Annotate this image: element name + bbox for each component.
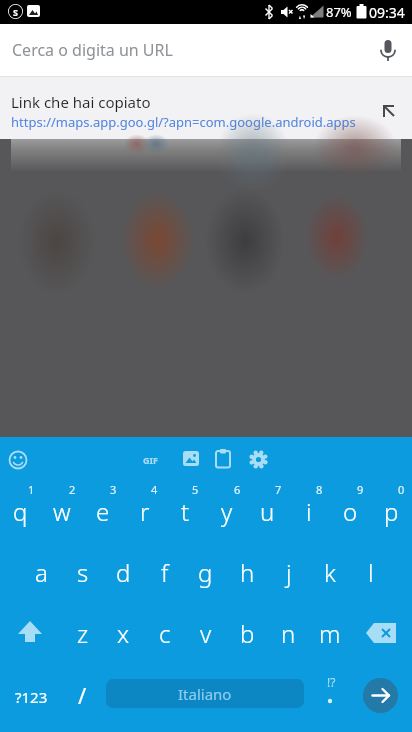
staticText: q xyxy=(13,495,28,528)
staticText: y xyxy=(221,495,233,528)
button[interactable] xyxy=(10,612,50,654)
staticText: l xyxy=(368,556,374,589)
button[interactable]: Italiano xyxy=(106,679,304,708)
button[interactable]: j xyxy=(268,546,309,598)
button[interactable]: n xyxy=(268,607,309,659)
button[interactable]: g xyxy=(185,546,226,598)
button[interactable]: w xyxy=(41,485,82,537)
button[interactable]: l xyxy=(350,546,391,598)
button[interactable] xyxy=(363,678,398,713)
button[interactable]: t xyxy=(165,485,206,537)
staticText: 0 xyxy=(398,482,405,496)
staticText: Italiano xyxy=(178,684,232,704)
button[interactable]: o xyxy=(330,485,371,537)
staticText: k xyxy=(324,556,336,589)
button[interactable] xyxy=(368,30,408,70)
button[interactable]: d xyxy=(103,546,144,598)
staticText: 7 xyxy=(275,482,282,496)
button[interactable]: / xyxy=(62,667,102,723)
button[interactable]: GIF xyxy=(136,448,164,472)
button[interactable]: p xyxy=(371,485,412,537)
button[interactable]: e xyxy=(82,485,123,537)
staticText: i xyxy=(306,495,312,528)
button[interactable]: q xyxy=(0,485,41,537)
staticText: GIF xyxy=(143,454,158,466)
button[interactable]: v xyxy=(185,607,226,659)
staticText: S xyxy=(13,6,18,18)
button[interactable]: u xyxy=(247,485,288,537)
staticText: 4 xyxy=(151,482,158,496)
staticText: 2 xyxy=(69,482,76,496)
button[interactable]: k xyxy=(309,546,350,598)
staticText: g xyxy=(198,556,213,589)
staticText: h xyxy=(240,556,255,589)
staticText: t xyxy=(181,495,190,528)
staticText: / xyxy=(78,680,87,710)
staticText: c xyxy=(159,617,171,650)
staticText: v xyxy=(200,617,212,650)
button[interactable]: x xyxy=(103,607,144,659)
button[interactable]: i xyxy=(288,485,329,537)
button[interactable] xyxy=(4,446,32,474)
button[interactable]: a xyxy=(21,546,62,598)
staticText: a xyxy=(35,556,48,589)
button[interactable] xyxy=(362,612,404,654)
button[interactable] xyxy=(215,449,232,468)
staticText: 9 xyxy=(357,482,364,496)
button[interactable]: m xyxy=(309,607,350,659)
staticText: ?123 xyxy=(15,687,48,707)
staticText: Link che hai copiato xyxy=(11,92,151,112)
button[interactable]: r xyxy=(124,485,165,537)
button[interactable]: Link che hai copiato xyxy=(0,77,412,139)
button[interactable]: b xyxy=(227,607,268,659)
staticText: s xyxy=(77,556,89,589)
button[interactable]: !? xyxy=(315,669,351,725)
staticText: e xyxy=(96,495,110,528)
staticText: n xyxy=(281,617,296,650)
staticText: o xyxy=(343,495,358,528)
staticText: p xyxy=(384,495,399,528)
button[interactable]: Cerca o digita un URL xyxy=(0,24,412,76)
button[interactable]: y xyxy=(206,485,247,537)
staticText: f xyxy=(161,556,169,589)
staticText: Cerca o digita un URL xyxy=(12,39,173,61)
staticText: x xyxy=(117,617,130,650)
staticText: u xyxy=(260,495,275,528)
staticText: 5 xyxy=(192,482,199,496)
staticText: z xyxy=(77,617,89,650)
staticText: 3 xyxy=(110,482,117,496)
staticText: w xyxy=(53,495,71,528)
staticText: 09:34 xyxy=(369,3,405,22)
staticText: 1 xyxy=(28,482,35,496)
staticText: m xyxy=(319,617,341,650)
button[interactable]: c xyxy=(144,607,185,659)
button[interactable] xyxy=(183,451,200,466)
button[interactable] xyxy=(249,450,268,469)
button[interactable]: h xyxy=(227,546,268,598)
staticText: 87% xyxy=(326,3,352,21)
staticText: r xyxy=(140,495,150,528)
staticText: 6 xyxy=(234,482,241,496)
staticText: j xyxy=(286,556,292,589)
staticText: https://maps.app.goo.gl/?apn=com.google.… xyxy=(11,113,371,131)
button[interactable]: s xyxy=(62,546,103,598)
button[interactable]: z xyxy=(62,607,103,659)
button[interactable]: ?123 xyxy=(8,669,54,725)
staticText: b xyxy=(240,617,255,650)
staticText: !? xyxy=(327,674,336,690)
staticText: 8 xyxy=(316,482,323,496)
button[interactable]: f xyxy=(144,546,185,598)
staticText: d xyxy=(116,556,131,589)
